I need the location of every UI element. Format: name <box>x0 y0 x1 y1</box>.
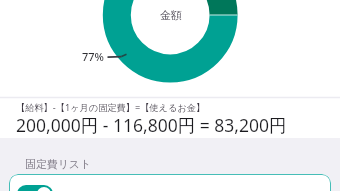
staticText: 金額 <box>160 8 182 22</box>
staticText: 77% <box>82 49 104 64</box>
staticText: 200,000円 - 116,800円 = 83,200円 <box>16 113 287 137</box>
button[interactable]: 固定費の有効/無効 <box>17 185 53 191</box>
button[interactable]: 固定費の有効/無効 <box>9 174 331 191</box>
staticText: 固定費リスト <box>25 158 92 172</box>
staticText: 【給料】-【1ヶ月の固定費】=【使えるお金】 <box>16 101 206 114</box>
